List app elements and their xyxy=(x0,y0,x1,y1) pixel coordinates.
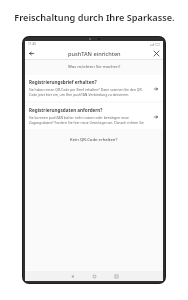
button[interactable]: Kein QR-Code erhalten? xyxy=(66,135,122,145)
staticText: Was möchten Sie machen? xyxy=(68,64,121,70)
button[interactable]: Startseite xyxy=(83,271,105,281)
staticText: Registrierungsbrief erhalten? xyxy=(29,79,97,85)
staticText: Sie haben einen QR-Code per Brief erhalt… xyxy=(29,87,149,97)
button[interactable]: Registrierungsbrief erhalten? xyxy=(25,75,163,101)
staticText: Registrierungsdaten anfordern? xyxy=(29,107,103,113)
button[interactable]: Zurück xyxy=(61,271,83,281)
button[interactable]: Übersicht xyxy=(105,271,127,281)
button[interactable]: Zurück xyxy=(25,47,38,60)
staticText: 11:45 xyxy=(28,42,37,46)
staticText: Kein QR-Code erhalten? xyxy=(70,137,118,143)
button[interactable]: Registrierungsdaten anfordern? xyxy=(25,103,163,129)
staticText: pushTAN einrichten xyxy=(68,50,121,58)
other: Weiter xyxy=(152,113,159,120)
other: Weiter xyxy=(152,85,159,92)
staticText: Freischaltung durch Ihre Sparkasse. xyxy=(14,11,175,24)
button[interactable]: Schließen xyxy=(150,47,163,60)
staticText: Sie konnten pushTAN bisher nicht nutzen … xyxy=(29,115,149,125)
